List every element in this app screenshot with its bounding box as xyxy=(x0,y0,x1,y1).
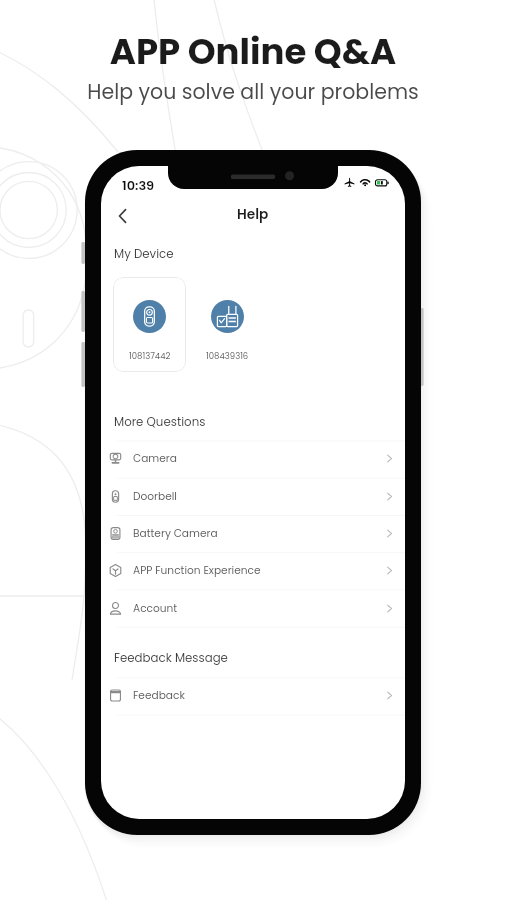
button[interactable]: Feedback xyxy=(101,677,405,714)
button[interactable]: Battery Camera xyxy=(101,515,405,552)
staticText: Help you solve all your problems xyxy=(0,77,506,106)
staticText: Feedback xyxy=(133,688,185,703)
staticText: APP Online Q&A xyxy=(0,27,506,77)
staticText: Help xyxy=(237,205,269,224)
button[interactable]: Account xyxy=(101,590,405,627)
staticText: My Device xyxy=(114,246,174,263)
button[interactable]: 108439316 xyxy=(191,277,264,372)
staticText: 108439316 xyxy=(206,350,249,362)
button[interactable]: Doorbell xyxy=(101,478,405,515)
staticText: Doorbell xyxy=(133,489,177,504)
staticText: Battery Camera xyxy=(133,526,218,541)
button[interactable]: Back xyxy=(107,200,139,232)
staticText: More Questions xyxy=(114,414,206,431)
staticText: 10:39 xyxy=(122,176,155,194)
staticText: Account xyxy=(133,601,178,616)
button[interactable]: APP Function Experience xyxy=(101,552,405,589)
staticText: Feedback Message xyxy=(114,650,228,667)
button[interactable]: Camera xyxy=(101,440,405,477)
staticText: 108137442 xyxy=(129,350,171,362)
staticText: APP Function Experience xyxy=(133,563,261,578)
button[interactable]: 108137442 xyxy=(113,277,186,372)
staticText: Camera xyxy=(133,451,177,466)
